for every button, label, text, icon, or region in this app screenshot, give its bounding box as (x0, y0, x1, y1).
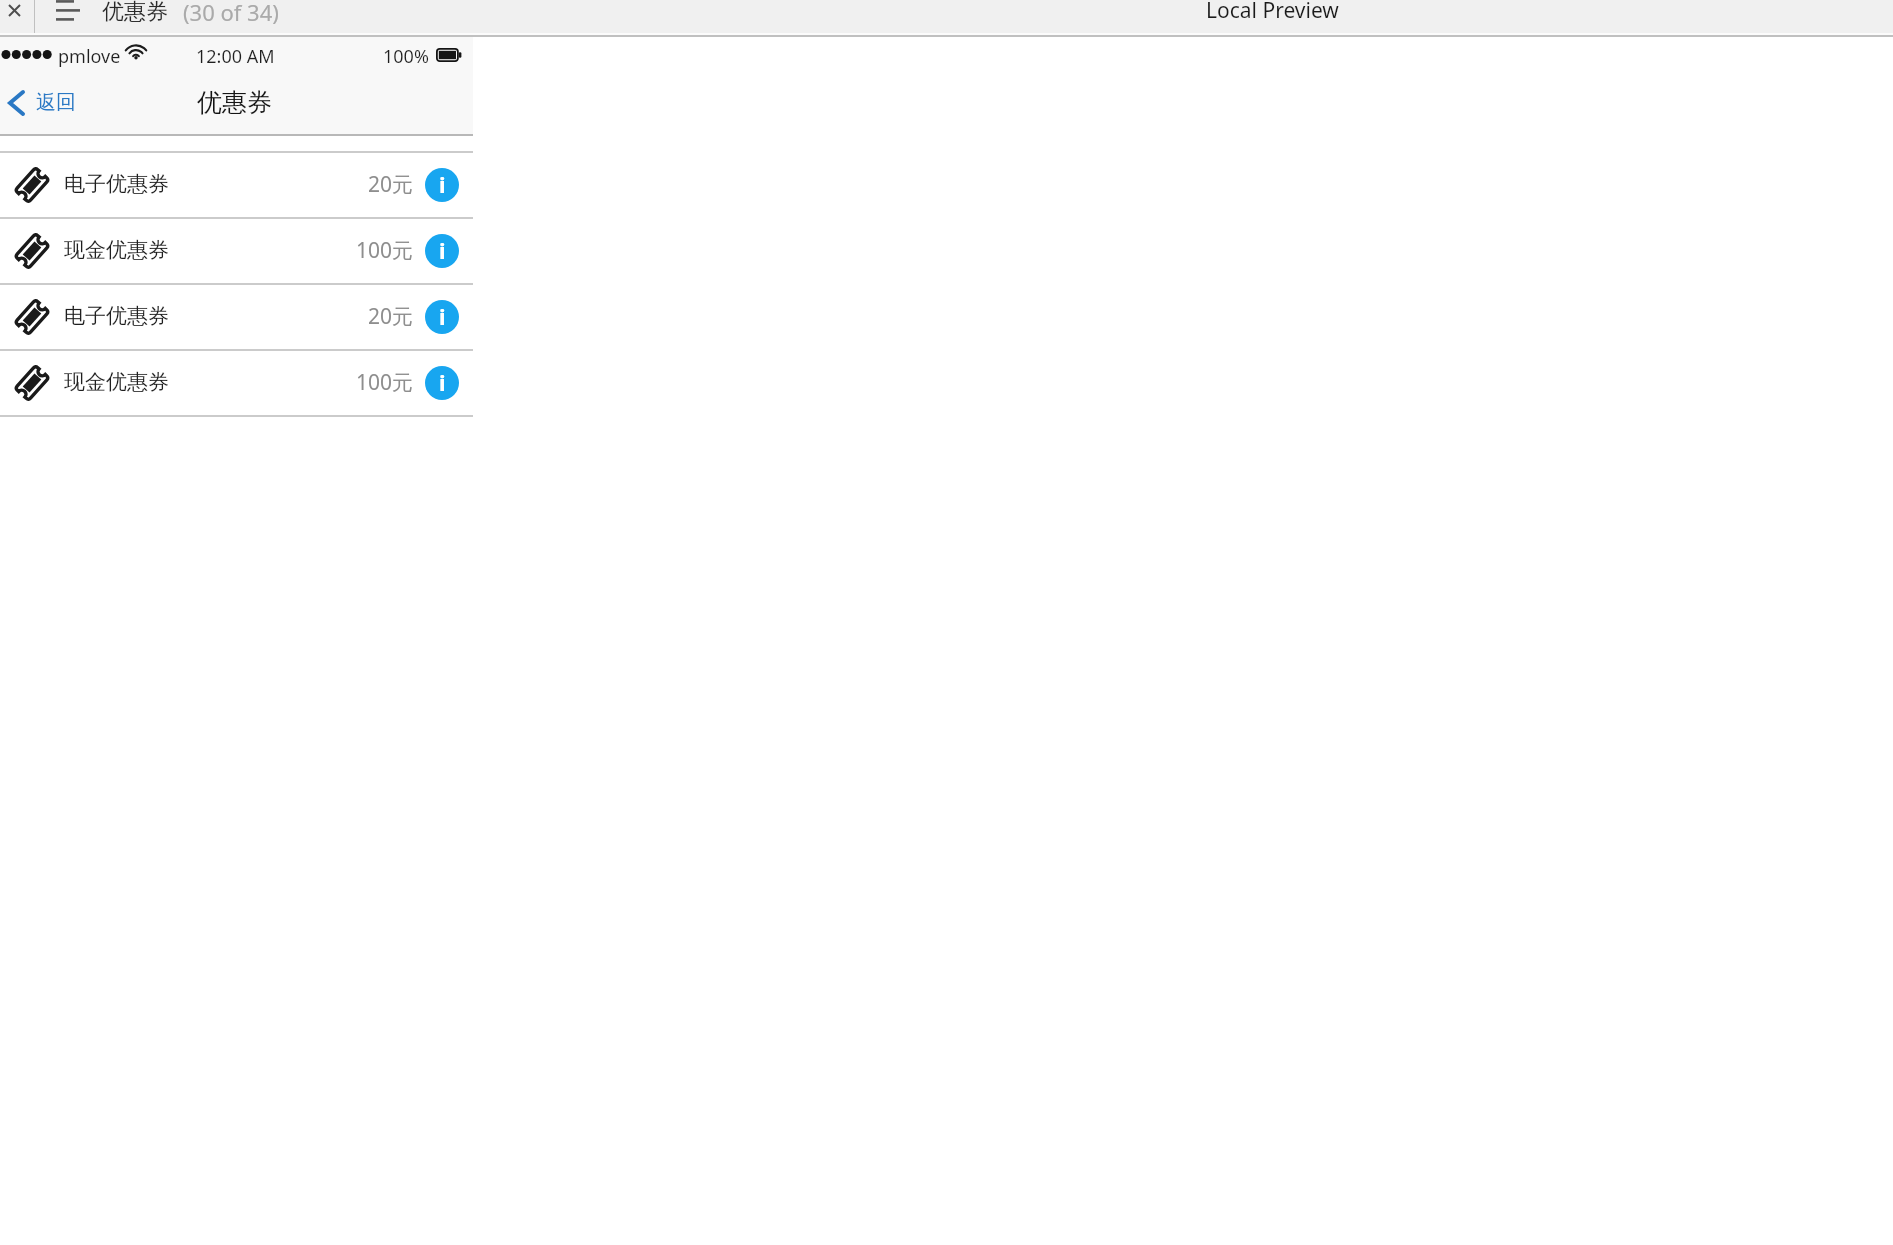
button[interactable]: Coupon details (425, 168, 459, 202)
staticText: 12:00 AM (196, 44, 275, 69)
button[interactable]: Coupon details (425, 234, 459, 268)
staticText: 100元 (356, 236, 414, 265)
button[interactable]: Coupon details (425, 300, 459, 334)
staticText: 20元 (368, 302, 414, 331)
staticText: (30 of 34) (183, 0, 279, 27)
staticText: 优惠券 (197, 87, 272, 118)
button[interactable]: Coupon details (425, 366, 459, 400)
button[interactable]: 电子优惠券 (0, 285, 473, 349)
staticText: i (439, 235, 446, 265)
button[interactable]: 电子优惠券 (0, 153, 473, 217)
staticText: 电子优惠券 (64, 303, 169, 329)
staticText: 现金优惠券 (64, 369, 169, 395)
staticText: 优惠券 (102, 0, 168, 26)
button[interactable]: 优惠券 (102, 0, 279, 27)
staticText: 现金优惠券 (64, 237, 169, 263)
staticText: 100% (383, 44, 429, 69)
staticText: Local Preview (1206, 0, 1339, 25)
button[interactable]: 现金优惠券 (0, 219, 473, 283)
staticText: 20元 (368, 170, 414, 199)
button[interactable]: 返回 (0, 72, 82, 134)
staticText: i (439, 367, 446, 397)
staticText: 电子优惠券 (64, 171, 169, 197)
button[interactable]: Screen list menu (51, 0, 85, 26)
staticText: i (439, 301, 446, 331)
staticText: pmlove (58, 44, 121, 69)
staticText: 返回 (36, 90, 76, 115)
button[interactable]: 现金优惠券 (0, 351, 473, 415)
staticText: 100元 (356, 368, 414, 397)
staticText: i (439, 169, 446, 199)
button[interactable]: Close preview (0, 0, 34, 22)
